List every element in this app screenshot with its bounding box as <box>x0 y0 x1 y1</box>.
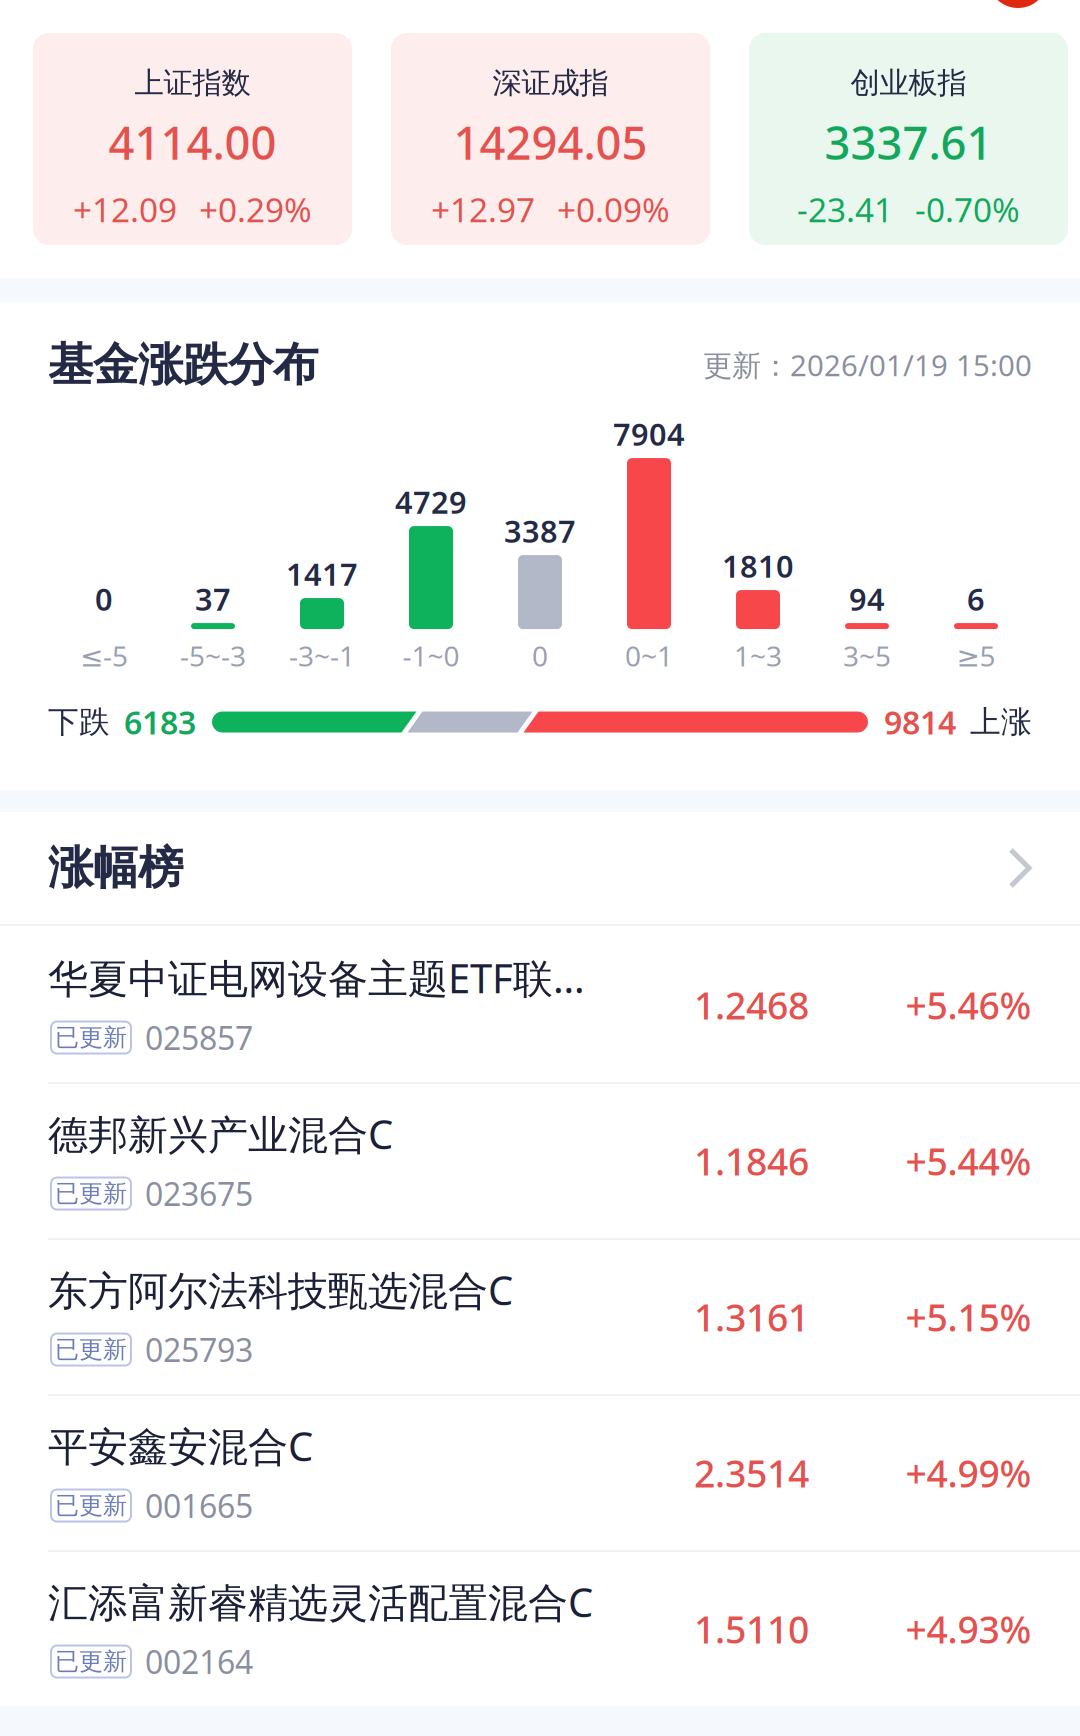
staticText: 已更新 <box>55 1647 127 1676</box>
staticText: 7904 <box>613 413 685 454</box>
staticText: -5~-3 <box>180 637 246 674</box>
staticText: 025793 <box>145 1328 253 1371</box>
staticText: ≥5 <box>956 637 995 674</box>
staticText: 4729 <box>395 481 467 522</box>
staticText: 1.5110 <box>694 1604 809 1654</box>
staticText: 2.3514 <box>694 1448 809 1498</box>
staticText: 上证指数 <box>134 65 250 101</box>
staticText: -3~-1 <box>289 637 355 674</box>
button[interactable]: 德邦新兴产业混合C <box>0 1082 1080 1238</box>
staticText: 1.3161 <box>694 1292 809 1342</box>
staticText: 德邦新兴产业混合C <box>48 1107 393 1160</box>
staticText: 深证成指 <box>492 65 608 101</box>
staticText: 94 <box>849 578 885 619</box>
staticText: 汇添富新睿精选灵活配置混合C <box>48 1575 593 1628</box>
staticText: 已更新 <box>55 1335 127 1364</box>
staticText: +5.15% <box>905 1292 1031 1342</box>
staticText: 9814 <box>884 701 956 743</box>
staticText: +0.09% <box>557 187 670 231</box>
staticText: 1.1846 <box>694 1136 809 1186</box>
staticText: 0 <box>532 637 548 674</box>
staticText: 下跌 <box>48 703 110 741</box>
button[interactable]: 涨幅榜 <box>0 812 1080 924</box>
staticText: 3337.61 <box>824 112 992 172</box>
staticText: 东方阿尔法科技甄选混合C <box>48 1263 513 1316</box>
staticText: +5.44% <box>905 1136 1031 1186</box>
staticText: 平安鑫安混合C <box>48 1419 313 1472</box>
staticText: -23.41 <box>797 187 893 231</box>
staticText: +12.09 <box>73 187 177 231</box>
button[interactable]: 东方阿尔法科技甄选混合C <box>0 1238 1080 1394</box>
staticText: 37 <box>195 578 231 619</box>
staticText: ≤-5 <box>80 637 128 674</box>
staticText: 上涨 <box>970 703 1032 741</box>
staticText: 3~5 <box>843 637 891 674</box>
button[interactable]: 上证指数 <box>33 33 352 245</box>
staticText: 001665 <box>145 1484 253 1527</box>
button[interactable]: 汇添富新睿精选灵活配置混合C <box>0 1550 1080 1706</box>
staticText: 0 <box>95 578 113 619</box>
staticText: -0.70% <box>915 187 1020 231</box>
staticText: 1~3 <box>734 637 782 674</box>
staticText: 0~1 <box>625 637 673 674</box>
staticText: 1.2468 <box>694 980 809 1030</box>
staticText: 已更新 <box>55 1179 127 1208</box>
staticText: 4114.00 <box>108 112 276 172</box>
staticText: 华夏中证电网设备主题ETF联… <box>48 951 585 1004</box>
staticText: 涨幅榜 <box>48 840 183 896</box>
staticText: 已更新 <box>55 1491 127 1520</box>
staticText: -1~0 <box>402 637 459 674</box>
staticText: +12.97 <box>431 187 535 231</box>
staticText: 更新：2026/01/19 15:00 <box>703 345 1032 384</box>
staticText: 025857 <box>145 1016 253 1059</box>
staticText: 023675 <box>145 1172 253 1215</box>
button[interactable]: 深证成指 <box>391 33 710 245</box>
staticText: 已更新 <box>55 1023 127 1052</box>
button[interactable]: 华夏中证电网设备主题ETF联… <box>0 926 1080 1082</box>
staticText: 创业板指 <box>850 65 966 101</box>
staticText: 14294.05 <box>453 112 647 172</box>
staticText: 1417 <box>286 553 358 594</box>
staticText: 002164 <box>145 1640 253 1683</box>
staticText: 基金涨跌分布 <box>48 337 318 393</box>
staticText: 6183 <box>124 701 196 743</box>
staticText: +4.99% <box>905 1448 1031 1498</box>
staticText: +5.46% <box>905 980 1031 1030</box>
staticText: 6 <box>967 578 985 619</box>
staticText: +0.29% <box>199 187 312 231</box>
staticText: 3387 <box>504 510 576 551</box>
button[interactable]: 平安鑫安混合C <box>0 1394 1080 1550</box>
button[interactable]: 创业板指 <box>749 33 1068 245</box>
staticText: +4.93% <box>905 1604 1031 1654</box>
staticText: 1810 <box>722 545 794 586</box>
